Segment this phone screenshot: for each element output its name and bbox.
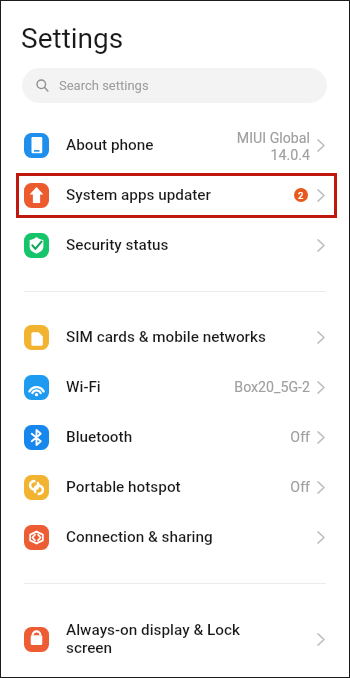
staticText: Off [290, 479, 310, 496]
staticText: Connection & sharing [66, 528, 317, 546]
button[interactable]: System apps updater [0, 170, 350, 220]
button[interactable]: SIM cards & mobile networks [0, 312, 350, 362]
staticText: SIM cards & mobile networks [66, 328, 317, 346]
staticText: About phone [66, 136, 236, 154]
staticText: Search settings [59, 78, 149, 93]
staticText: Settings [21, 22, 124, 55]
staticText: System apps updater [66, 186, 294, 204]
button[interactable]: Search settings [22, 68, 327, 103]
staticText: Off [290, 429, 310, 446]
button[interactable]: Connection & sharing [0, 512, 350, 562]
staticText: Bluetooth [66, 428, 290, 446]
staticText: MIUI Global 14.0.4 [236, 130, 310, 164]
staticText: Security status [66, 236, 317, 254]
staticText: Wi-Fi [66, 378, 234, 396]
button[interactable]: Portable hotspot [0, 462, 350, 512]
staticText: Portable hotspot [66, 478, 290, 496]
button[interactable]: Security status [0, 220, 350, 270]
staticText: Always-on display & Lock screen [66, 621, 317, 657]
staticText: 2 [298, 190, 304, 201]
button[interactable]: Always-on display & Lock screen [0, 614, 350, 664]
button[interactable]: Bluetooth [0, 412, 350, 462]
button[interactable]: Wi-Fi [0, 362, 350, 412]
staticText: Box20_5G-2 [234, 379, 310, 396]
button[interactable]: About phone [0, 120, 350, 170]
